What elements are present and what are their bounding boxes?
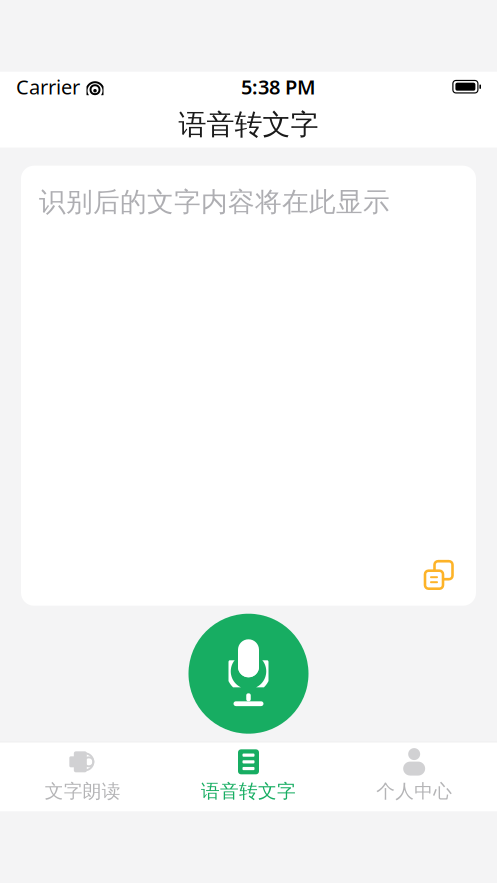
staticText: 识别后的文字内容将在此显示 <box>39 186 390 218</box>
staticText: 个人中心 <box>376 780 452 803</box>
staticText: 文字朗读 <box>45 780 121 803</box>
staticText: 5:38 PM <box>241 73 316 100</box>
staticText: Carrier <box>16 73 80 100</box>
button[interactable]: 个人中心 <box>331 741 497 813</box>
button[interactable]: 文字朗读 <box>0 741 166 813</box>
button[interactable]: 语音转文字 <box>166 741 331 813</box>
button[interactable]: 复制文字 <box>418 556 458 596</box>
staticText: 语音转文字 <box>178 107 318 142</box>
button[interactable]: 开始录音 <box>188 614 308 734</box>
staticText: 语音转文字 <box>201 780 296 803</box>
